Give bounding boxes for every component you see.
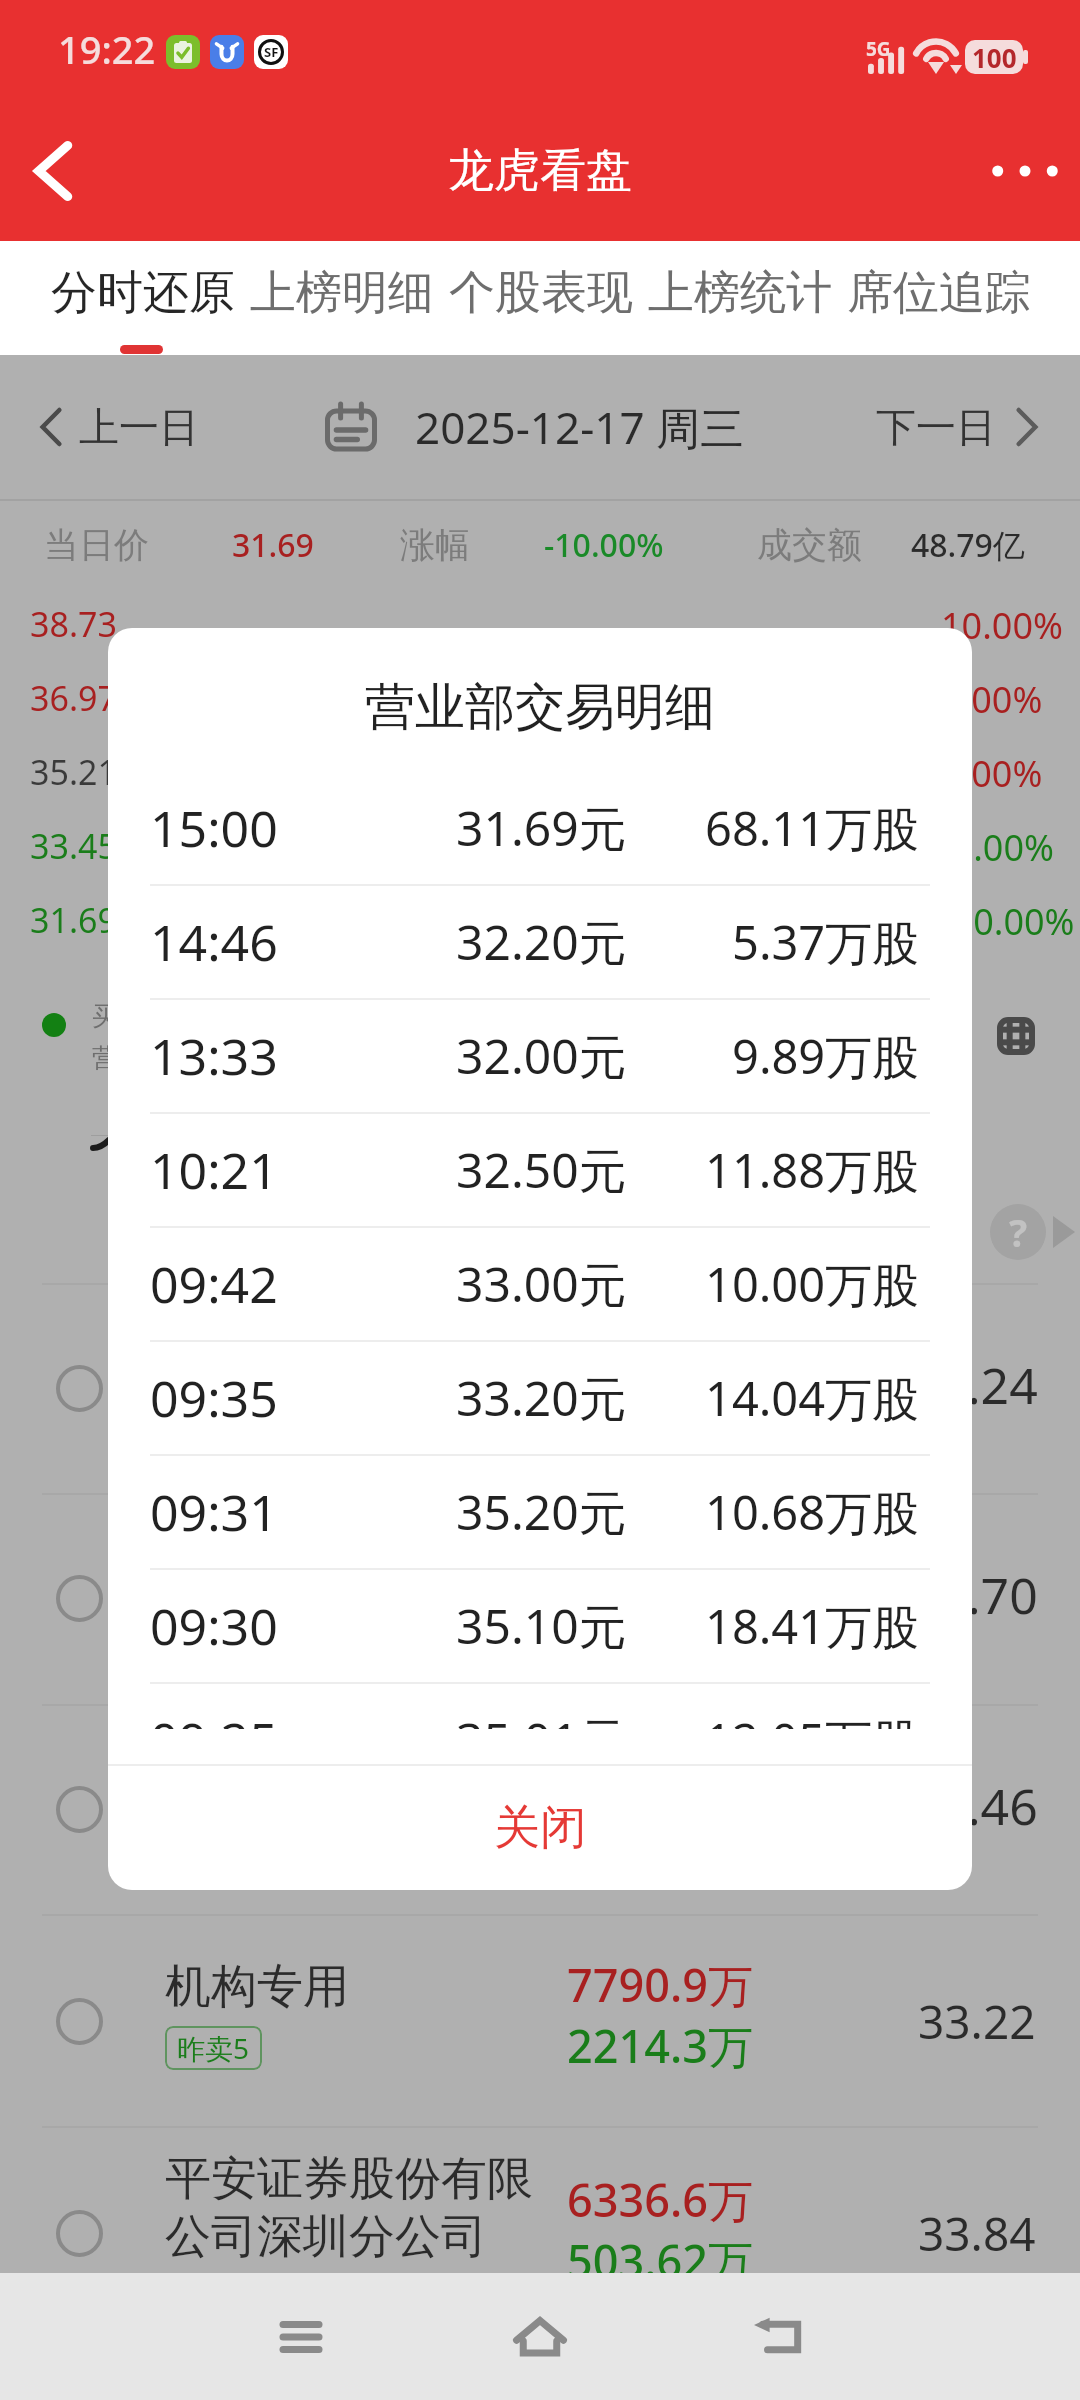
button[interactable]: 上榜明细	[250, 264, 434, 322]
staticText: 机构专用	[165, 1958, 349, 2016]
staticText: 平安证券股份有限	[165, 2150, 533, 2208]
staticText: 13:33	[150, 1022, 278, 1090]
staticText: 31.69	[30, 897, 117, 943]
staticText: 6336.6万	[567, 2169, 753, 2230]
staticText: 9.89万股	[732, 1024, 920, 1088]
staticText: 18.41万股	[705, 1594, 920, 1658]
staticText: 营业	[92, 1042, 144, 1075]
staticText: 席位追踪	[847, 264, 1031, 322]
staticText: 上一日	[79, 402, 199, 452]
button[interactable]: 机构专用	[0, 1916, 1080, 2126]
staticText: 48.46	[910, 1772, 1038, 1840]
staticText: 33.84	[918, 2202, 1036, 2265]
button[interactable]: 个股表现	[449, 264, 633, 322]
staticText: 38.73	[30, 601, 117, 647]
staticText: 11.88万股	[705, 1138, 920, 1202]
button[interactable]: 关闭	[108, 1766, 972, 1890]
button[interactable]: Back	[720, 2273, 840, 2400]
button[interactable]: 下一日	[876, 402, 1038, 452]
staticText: 32.00元	[456, 1023, 627, 1089]
staticText: 09:42	[150, 1250, 278, 1318]
staticText: 上榜明细	[250, 264, 434, 322]
staticText: 5G	[866, 36, 891, 62]
staticText: 10.68万股	[705, 1480, 920, 1544]
button[interactable]: 席位追踪	[847, 264, 1031, 322]
staticText: 68.11万股	[705, 796, 920, 860]
staticText: 503.62万	[567, 2230, 753, 2291]
staticText: 5.00%	[941, 675, 1043, 724]
staticText: 35.10元	[456, 1593, 627, 1659]
staticText: -10.00%	[941, 897, 1075, 946]
button[interactable]: 2025-12-17 周三	[325, 397, 745, 457]
staticText: 10.00%	[941, 601, 1063, 650]
staticText: 成交额	[757, 523, 862, 567]
staticText: 14:46	[150, 908, 278, 976]
button[interactable]: 分时还原	[51, 264, 235, 322]
staticText: 涨幅	[400, 523, 470, 567]
staticText: 14.04万股	[705, 1366, 920, 1430]
staticText: 龙虎看盘	[448, 142, 632, 200]
staticText: -10.00%	[544, 523, 664, 567]
button[interactable]: Home	[480, 2273, 600, 2400]
staticText: 当日价	[44, 523, 149, 567]
staticText: 35.01元	[456, 1707, 627, 1729]
staticText: ?	[1009, 1206, 1028, 1258]
staticText: 买入	[92, 1000, 144, 1033]
staticText: 12.05万股	[705, 1708, 920, 1729]
button[interactable]: 上榜统计	[648, 264, 832, 322]
staticText: 32.50元	[456, 1137, 627, 1203]
staticText: 0.00%	[941, 749, 1043, 798]
button[interactable]: Back	[0, 116, 110, 226]
button[interactable]: 上一日	[40, 402, 199, 452]
staticText: 33.00元	[456, 1251, 627, 1317]
staticText: 上榜统计	[648, 264, 832, 322]
staticText: 35.20元	[456, 1479, 627, 1545]
staticText: 33.45	[30, 823, 117, 869]
staticText: 49.70	[910, 1561, 1038, 1629]
staticText: 32.20元	[456, 909, 627, 975]
staticText: 公司深圳分公司	[165, 2208, 487, 2266]
staticText: 2025-12-17 周三	[415, 397, 745, 457]
staticText: 36.97	[30, 675, 117, 721]
staticText: 09:25	[150, 1706, 278, 1729]
staticText: 15:00	[150, 794, 278, 862]
staticText: 10:21	[150, 1136, 278, 1204]
staticText: 下一日	[876, 402, 996, 452]
staticText: 个股表现	[449, 264, 633, 322]
staticText: 分时还原	[51, 264, 235, 322]
staticText: -5.00%	[941, 823, 1054, 872]
staticText: 35.21	[30, 749, 117, 795]
button[interactable]: More options	[970, 116, 1080, 226]
staticText: 33.20元	[456, 1365, 627, 1431]
staticText: 关闭	[494, 1799, 586, 1857]
staticText: 2214.3万	[567, 2015, 753, 2076]
button[interactable]: Recent apps	[241, 2273, 361, 2400]
staticText: 31.69元	[456, 795, 627, 861]
staticText: 33.22	[918, 1990, 1036, 2053]
staticText: 48.79亿	[911, 523, 1025, 567]
staticText: 昨卖5	[177, 2029, 250, 2067]
staticText: 31.69	[232, 523, 314, 567]
staticText: 7790.9万	[567, 1954, 753, 2015]
staticText: 09:31	[150, 1478, 278, 1546]
staticText: 19:22	[58, 23, 156, 75]
staticText: 5.37万股	[732, 910, 920, 974]
staticText: SF	[264, 43, 279, 61]
staticText: 100	[972, 40, 1017, 74]
staticText: 09:35	[150, 1364, 278, 1432]
staticText: 营业部交易明细	[365, 676, 715, 739]
staticText: 09:30	[150, 1592, 278, 1660]
staticText: 10.00万股	[705, 1252, 920, 1316]
button[interactable]: 平安证券股份有限	[0, 2128, 1080, 2338]
staticText: 48.24	[910, 1351, 1038, 1419]
